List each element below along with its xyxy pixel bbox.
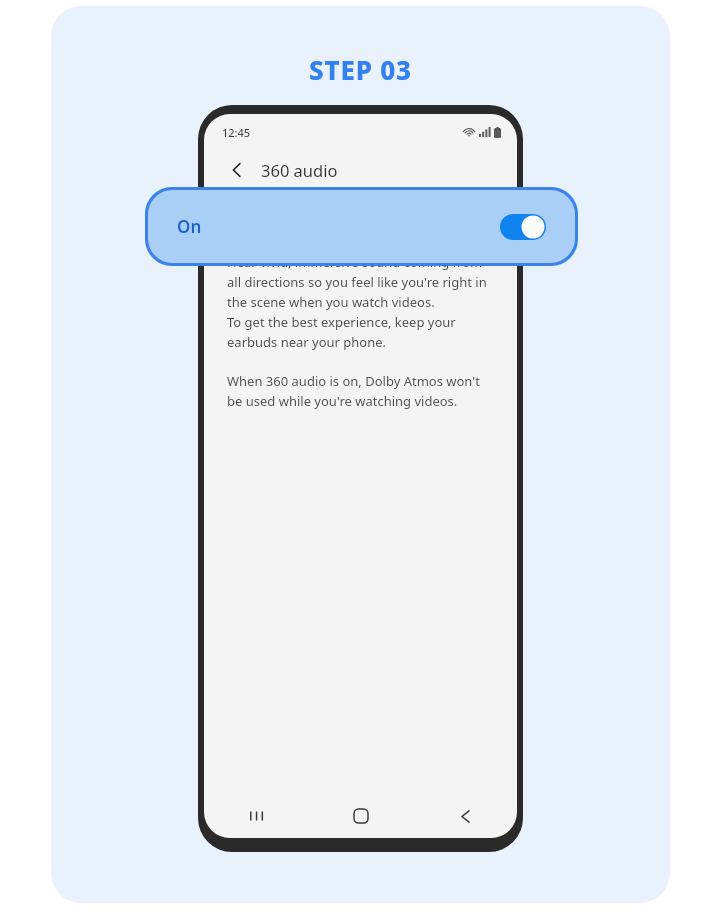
button[interactable]: Recents	[204, 794, 309, 838]
staticText: When 360 audio is on, Dolby Atmos won't …	[227, 372, 480, 410]
staticText: 360 audio	[261, 159, 338, 181]
staticText: STEP 03	[309, 52, 412, 87]
button[interactable]: Back	[413, 794, 517, 838]
button[interactable]: Home	[309, 794, 413, 838]
staticText: On	[177, 215, 202, 238]
staticText: Hear vivid, immersive sound coming from …	[227, 253, 487, 351]
button[interactable]: On	[145, 187, 578, 266]
button[interactable]: Back	[222, 155, 252, 185]
staticText: 12:45	[222, 125, 251, 140]
